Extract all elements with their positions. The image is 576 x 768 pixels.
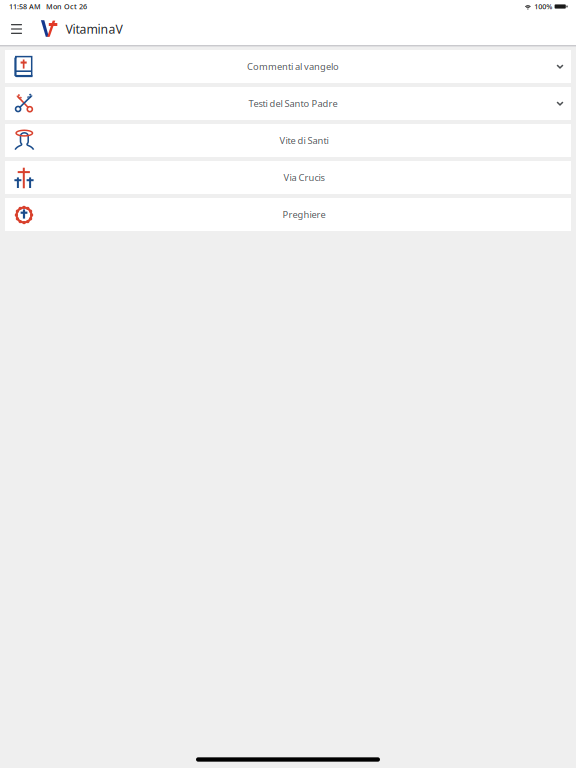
staticText: Commenti al vangelo: [247, 60, 339, 73]
button[interactable]: Commenti al vangelo: [5, 50, 571, 83]
staticText: Via Crucis: [283, 171, 324, 184]
staticText: Preghiere: [282, 208, 325, 221]
staticText: Vite di Santi: [279, 134, 328, 147]
button[interactable]: Testi del Santo Padre: [5, 87, 571, 120]
button[interactable]: Via Crucis: [5, 161, 571, 194]
staticText: VitaminaV: [65, 21, 122, 37]
staticText: Mon Oct 26: [46, 2, 87, 11]
button[interactable]: Vite di Santi: [5, 124, 571, 157]
button[interactable]: Preghiere: [5, 198, 571, 231]
staticText: 11:58 AM: [9, 2, 41, 11]
staticText: Testi del Santo Padre: [248, 97, 337, 110]
staticText: 100%: [534, 2, 552, 11]
button[interactable]: Menu: [5, 16, 27, 42]
